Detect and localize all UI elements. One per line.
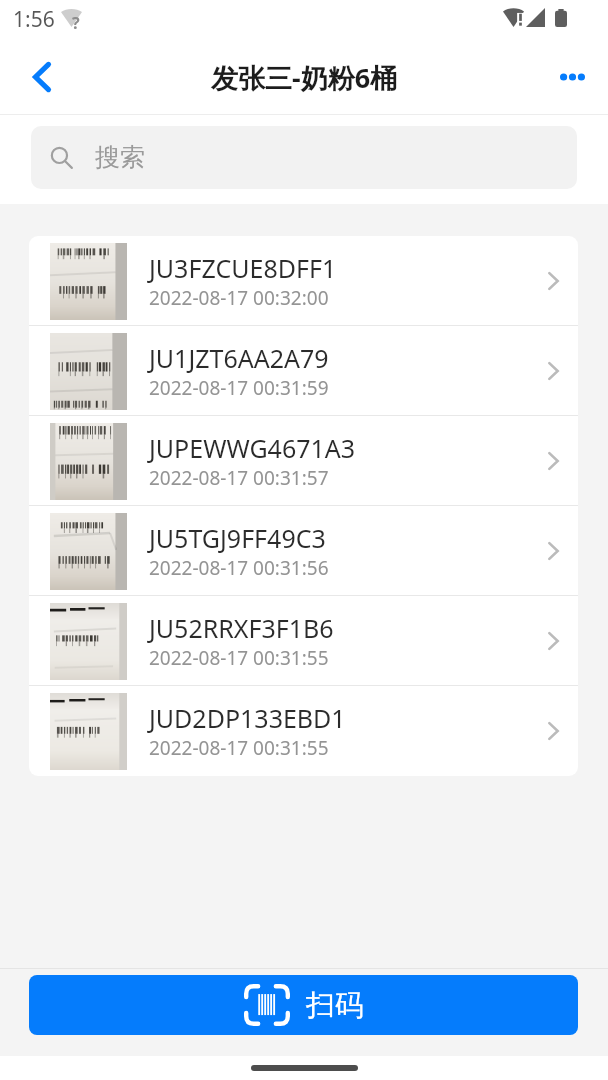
button[interactable]: JU1JZT6AA2A79	[29, 326, 578, 416]
staticText: 2022-08-17 00:31:57	[149, 465, 329, 491]
staticText: 扫码	[306, 987, 364, 1024]
button[interactable]: JU52RRXF3F1B6	[29, 596, 578, 686]
staticText: ?	[72, 12, 80, 34]
button[interactable]: JUPEWWG4671A3	[29, 416, 578, 506]
staticText: 搜索	[95, 142, 145, 173]
staticText: JU3FZCUE8DFF1	[149, 251, 337, 285]
staticText: JUD2DP133EBD1	[149, 701, 346, 735]
staticText: 2022-08-17 00:31:59	[149, 375, 329, 401]
staticText: JU1JZT6AA2A79	[149, 341, 329, 375]
button[interactable]: Back	[0, 44, 82, 115]
staticText: 2022-08-17 00:31:55	[149, 645, 329, 671]
staticText: 1:56	[13, 5, 55, 34]
button[interactable]: JU3FZCUE8DFF1	[29, 236, 578, 326]
button[interactable]: JU5TGJ9FF49C3	[29, 506, 578, 596]
staticText: JU5TGJ9FF49C3	[149, 521, 326, 555]
button[interactable]: 搜索	[31, 126, 577, 189]
staticText: 2022-08-17 00:31:55	[149, 735, 329, 761]
button[interactable]: 扫码	[29, 975, 578, 1035]
button[interactable]: JUD2DP133EBD1	[29, 686, 578, 776]
staticText: 发张三-奶粉6桶	[211, 59, 398, 96]
staticText: JUPEWWG4671A3	[149, 431, 356, 465]
button[interactable]: More options	[536, 44, 608, 115]
staticText: JU52RRXF3F1B6	[149, 611, 334, 645]
staticText: 2022-08-17 00:31:56	[149, 555, 329, 581]
staticText: 2022-08-17 00:32:00	[149, 285, 329, 311]
